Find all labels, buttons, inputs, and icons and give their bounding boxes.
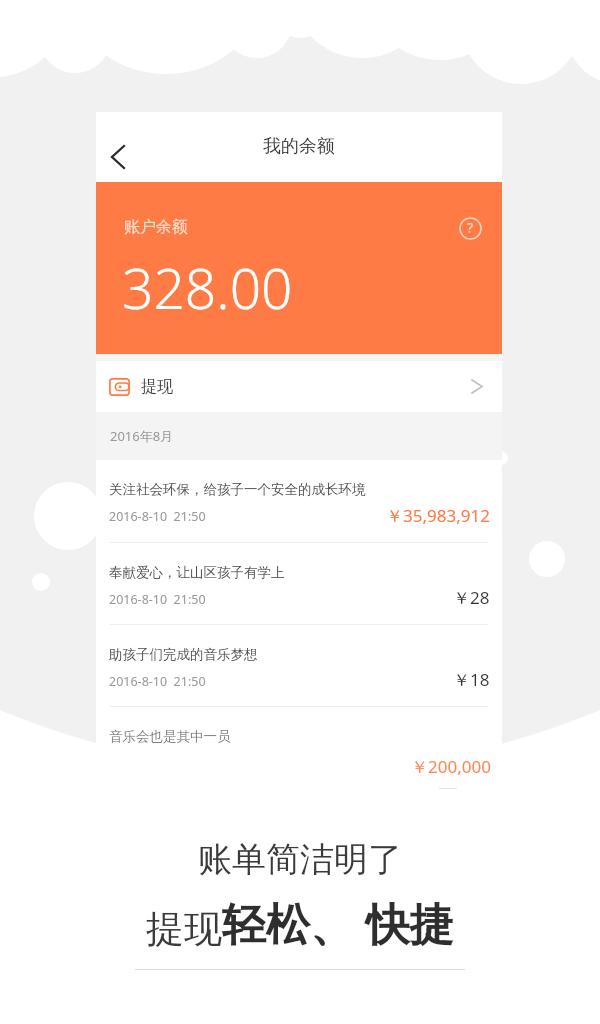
button[interactable]: Help — [454, 212, 486, 244]
button[interactable]: 助孩子们完成的音乐梦想 — [96, 625, 502, 707]
staticText: ￥18 — [453, 668, 490, 691]
button[interactable]: 奉献爱心，让山区孩子有学上 — [96, 543, 502, 625]
staticText: 音乐会也是其中一员 — [109, 728, 231, 745]
staticText: 账单简洁明了 — [198, 838, 402, 881]
staticText: ￥35,983,912 — [386, 504, 490, 527]
staticText: 账户余额 — [124, 217, 188, 237]
staticText: 提现 — [146, 905, 222, 953]
staticText: 提现 — [141, 377, 173, 397]
staticText: ? — [467, 218, 474, 237]
button[interactable]: 关注社会环保，给孩子一个安全的成长环境 — [96, 460, 502, 543]
staticText: 2016-8-10 21:50 — [109, 673, 206, 690]
staticText: 关注社会环保，给孩子一个安全的成长环境 — [109, 481, 366, 498]
staticText: 328.00 — [122, 250, 293, 325]
button[interactable]: 提现 — [96, 361, 502, 412]
button[interactable]: 音乐会也是其中一员 — [96, 707, 502, 797]
staticText: ￥28 — [453, 586, 490, 609]
staticText: 2016年8月 — [110, 427, 174, 445]
staticText: 我的余额 — [263, 135, 335, 158]
staticText: 轻松、 快捷 — [222, 893, 454, 953]
staticText: 2016-8-10 21:50 — [109, 591, 206, 608]
staticText: 2016-8-10 21:50 — [109, 508, 206, 525]
staticText: 助孩子们完成的音乐梦想 — [109, 646, 258, 663]
button[interactable]: Back — [102, 135, 136, 179]
staticText: 奉献爱心，让山区孩子有学上 — [109, 564, 285, 581]
staticText: ￥200,000 — [411, 755, 491, 778]
